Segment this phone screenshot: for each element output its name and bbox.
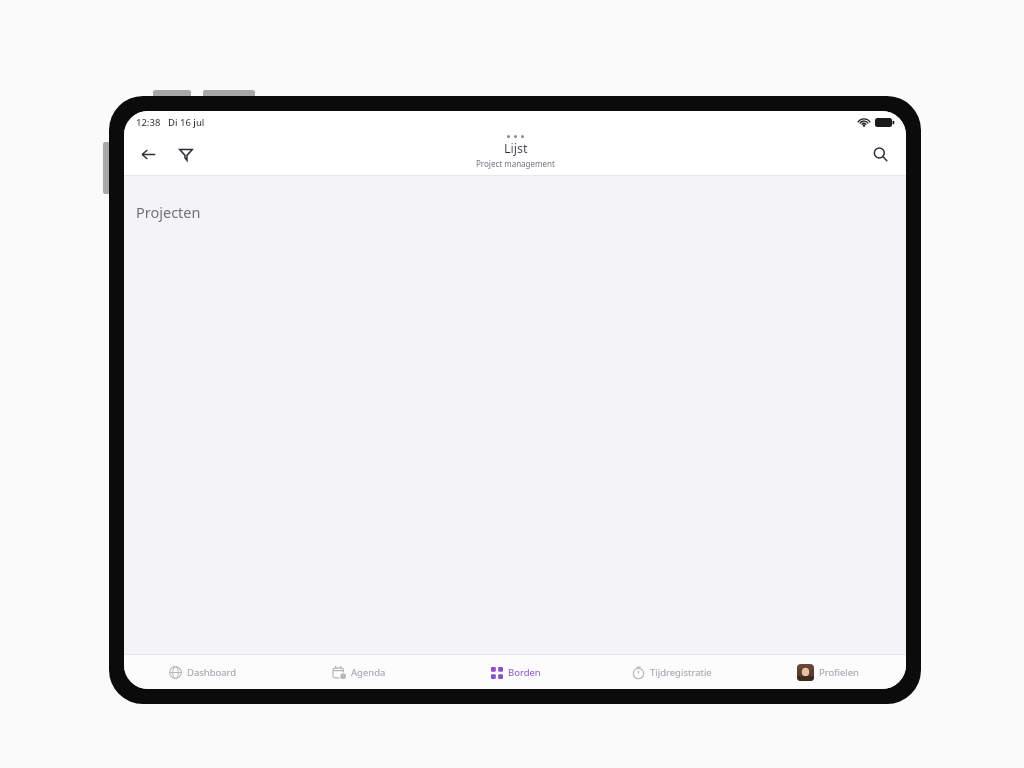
button[interactable]: Agenda bbox=[281, 655, 438, 689]
button[interactable]: Dashboard bbox=[124, 655, 281, 689]
staticText: 12:38 bbox=[136, 116, 161, 129]
button[interactable]: Back bbox=[132, 138, 164, 170]
button[interactable]: Profielen bbox=[750, 655, 906, 689]
staticText: Dashboard bbox=[187, 666, 237, 679]
button[interactable]: Search bbox=[864, 138, 896, 170]
staticText: Project management bbox=[476, 158, 555, 169]
button[interactable]: Tijdregistratie bbox=[594, 655, 750, 689]
staticText: Agenda bbox=[351, 666, 386, 679]
staticText: Di 16 jul bbox=[168, 116, 205, 129]
button[interactable]: Borden bbox=[438, 655, 594, 689]
button[interactable]: Filter bbox=[170, 138, 202, 170]
staticText: Profielen bbox=[819, 666, 859, 679]
staticText: Tijdregistratie bbox=[650, 666, 712, 679]
staticText: Projecten bbox=[136, 202, 201, 222]
staticText: Borden bbox=[508, 666, 541, 679]
staticText: Lijst bbox=[504, 140, 528, 157]
